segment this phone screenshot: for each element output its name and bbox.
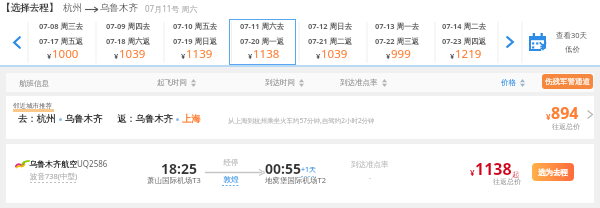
button[interactable]: 07-14 周二去 (431, 18, 498, 66)
staticText: 07-14 周二去 (442, 21, 487, 31)
staticText: 到达准点率 (351, 160, 389, 169)
staticText: 07-23 周四返 (442, 36, 487, 46)
staticText: 查看30天 (556, 30, 588, 40)
staticText: 起 (512, 170, 519, 179)
staticText: 07-11 周六去 (240, 21, 285, 31)
button[interactable]: 07-10 周五去 (162, 18, 229, 66)
staticText: 伤残军警通道 (545, 77, 590, 86)
button[interactable]: 查看30天 (522, 18, 600, 66)
button[interactable]: 07-08 周三去 (28, 18, 95, 66)
button[interactable]: 价格 (501, 78, 525, 87)
staticText: 1139 (186, 46, 213, 62)
staticText: 上海 (182, 113, 201, 125)
staticText: 敦煌 (214, 175, 248, 184)
staticText: 07-12 周日去 (308, 21, 353, 31)
staticText: 到达准点率 (340, 78, 378, 87)
staticText: 萧山国际机场T3 (144, 175, 204, 185)
staticText: 1138 (475, 158, 512, 180)
staticText: 地窝堡国际机场T2 (265, 175, 326, 185)
staticText: ¥ (248, 51, 253, 61)
button[interactable]: 邻近城市推荐 (6, 96, 594, 139)
button[interactable]: 上一组日期 (0, 18, 28, 66)
staticText: 从上海到杭州乘坐火车约57分钟,自驾约2小时2分钟 (228, 116, 375, 125)
staticText: 到达时间 (265, 78, 295, 87)
button[interactable]: 到达时间 (265, 78, 304, 87)
staticText: 1000 (52, 46, 79, 62)
button[interactable]: 07-09 周四去 (95, 18, 162, 66)
staticText: ¥ (386, 51, 391, 61)
staticText: 1039 (321, 46, 348, 62)
staticText: 07-18 周六返 (106, 36, 151, 46)
staticText: 价格 (501, 78, 516, 87)
staticText: 1138 (253, 46, 280, 62)
staticText: 07-19 周日返 (173, 36, 218, 46)
staticText: 往返总价 (493, 177, 521, 186)
staticText: +1天 (301, 165, 317, 175)
staticText: ¥ (470, 167, 475, 178)
staticText: ¥ (181, 51, 186, 61)
staticText: 999 (391, 46, 411, 62)
staticText: 07-17 周五返 (39, 36, 84, 46)
button[interactable]: 07-11 周六去 (229, 19, 296, 65)
staticText: 往返总价 (552, 122, 580, 131)
staticText: 航班信息 (19, 79, 49, 88)
button[interactable]: 乌鲁木齐航空 (6, 144, 594, 203)
button[interactable]: 到达准点率 (340, 78, 387, 87)
staticText: ¥ (450, 51, 455, 61)
staticText: 18:25 (154, 159, 204, 178)
staticText: 起飞时间 (157, 78, 187, 87)
staticText: UQ2586 (77, 158, 108, 169)
staticText: 去：杭州 (18, 113, 56, 125)
staticText: 07-09 周四去 (106, 21, 151, 31)
staticText: 894 (551, 102, 579, 124)
button[interactable]: 下一组日期 (498, 18, 522, 66)
button[interactable]: 07-13 周一去 (364, 18, 431, 66)
staticText: 07-20 周一返 (240, 36, 285, 46)
staticText: 乌鲁木齐航空 (29, 159, 77, 169)
staticText: 07-21 周二返 (308, 36, 353, 46)
staticText: 07-13 周一去 (375, 21, 420, 31)
staticText: 07-10 周五去 (173, 21, 218, 31)
staticText: 经停 (212, 158, 250, 167)
button[interactable]: 伤残军警通道 (542, 74, 593, 89)
button[interactable]: 选为去程 (532, 163, 574, 181)
staticText: 07-22 周三返 (375, 36, 420, 46)
staticText: ¥ (316, 51, 321, 61)
staticText: 【选择去程】 (1, 2, 58, 14)
staticText: 07-08 周三去 (39, 21, 84, 31)
staticText: 乌鲁木齐 (65, 113, 103, 125)
staticText: 1039 (119, 46, 146, 62)
staticText: 07月11号 周六 (145, 3, 198, 14)
button[interactable]: 07-12 周日去 (297, 18, 364, 66)
staticText: 00:55 (265, 159, 301, 178)
staticText: 邻近城市推荐 (13, 102, 52, 110)
staticText: 低价 (565, 45, 580, 54)
staticText: 乌鲁木齐 (100, 2, 138, 14)
staticText: ¥ (546, 111, 551, 122)
staticText: 返：乌鲁木齐 (117, 113, 173, 125)
staticText: 杭州 (63, 2, 82, 14)
staticText: ¥ (47, 51, 52, 61)
button[interactable]: 起飞时间 (157, 78, 196, 87)
staticText: 波音738(中型) (30, 171, 78, 181)
staticText: 选为去程 (538, 168, 568, 177)
staticText: ¥ (114, 51, 119, 61)
staticText: 1219 (455, 46, 482, 62)
